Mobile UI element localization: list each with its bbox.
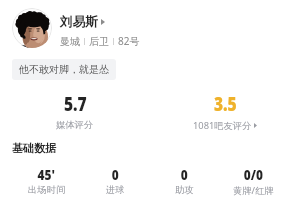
staticText: 基础数据 [12, 141, 56, 155]
staticText: 助攻 [175, 184, 194, 196]
button[interactable]: Player avatar [12, 8, 52, 48]
button[interactable]: 他不敢对脚，就是怂 [12, 59, 116, 80]
staticText: 媒体评分 [56, 119, 94, 131]
staticText: 82号 [118, 34, 140, 48]
staticText: 1081吧友评分 [193, 119, 252, 132]
button[interactable]: 45' [12, 165, 81, 196]
staticText: 黄牌/红牌 [233, 184, 274, 197]
staticText: 0 [112, 165, 119, 184]
staticText: 0 [181, 165, 188, 184]
staticText: 进球 [106, 184, 125, 196]
staticText: 出场时间 [28, 184, 66, 196]
button[interactable]: 3.5 [150, 90, 300, 132]
button[interactable]: 刘易斯 [60, 14, 105, 30]
button[interactable]: 0 [150, 165, 219, 196]
staticText: 0/0 [244, 165, 263, 184]
button[interactable]: 0/0 [219, 165, 288, 197]
button[interactable]: 5.7 [0, 90, 150, 131]
staticText: 3.5 [214, 90, 237, 117]
staticText: 5.7 [64, 90, 87, 117]
staticText: 曼城 [60, 35, 80, 48]
staticText: 刘易斯 [60, 14, 98, 30]
button[interactable]: 0 [81, 165, 150, 196]
staticText: 45' [38, 165, 55, 184]
staticText: 后卫 [89, 35, 109, 48]
staticText: 他不敢对脚，就是怂 [19, 63, 109, 76]
